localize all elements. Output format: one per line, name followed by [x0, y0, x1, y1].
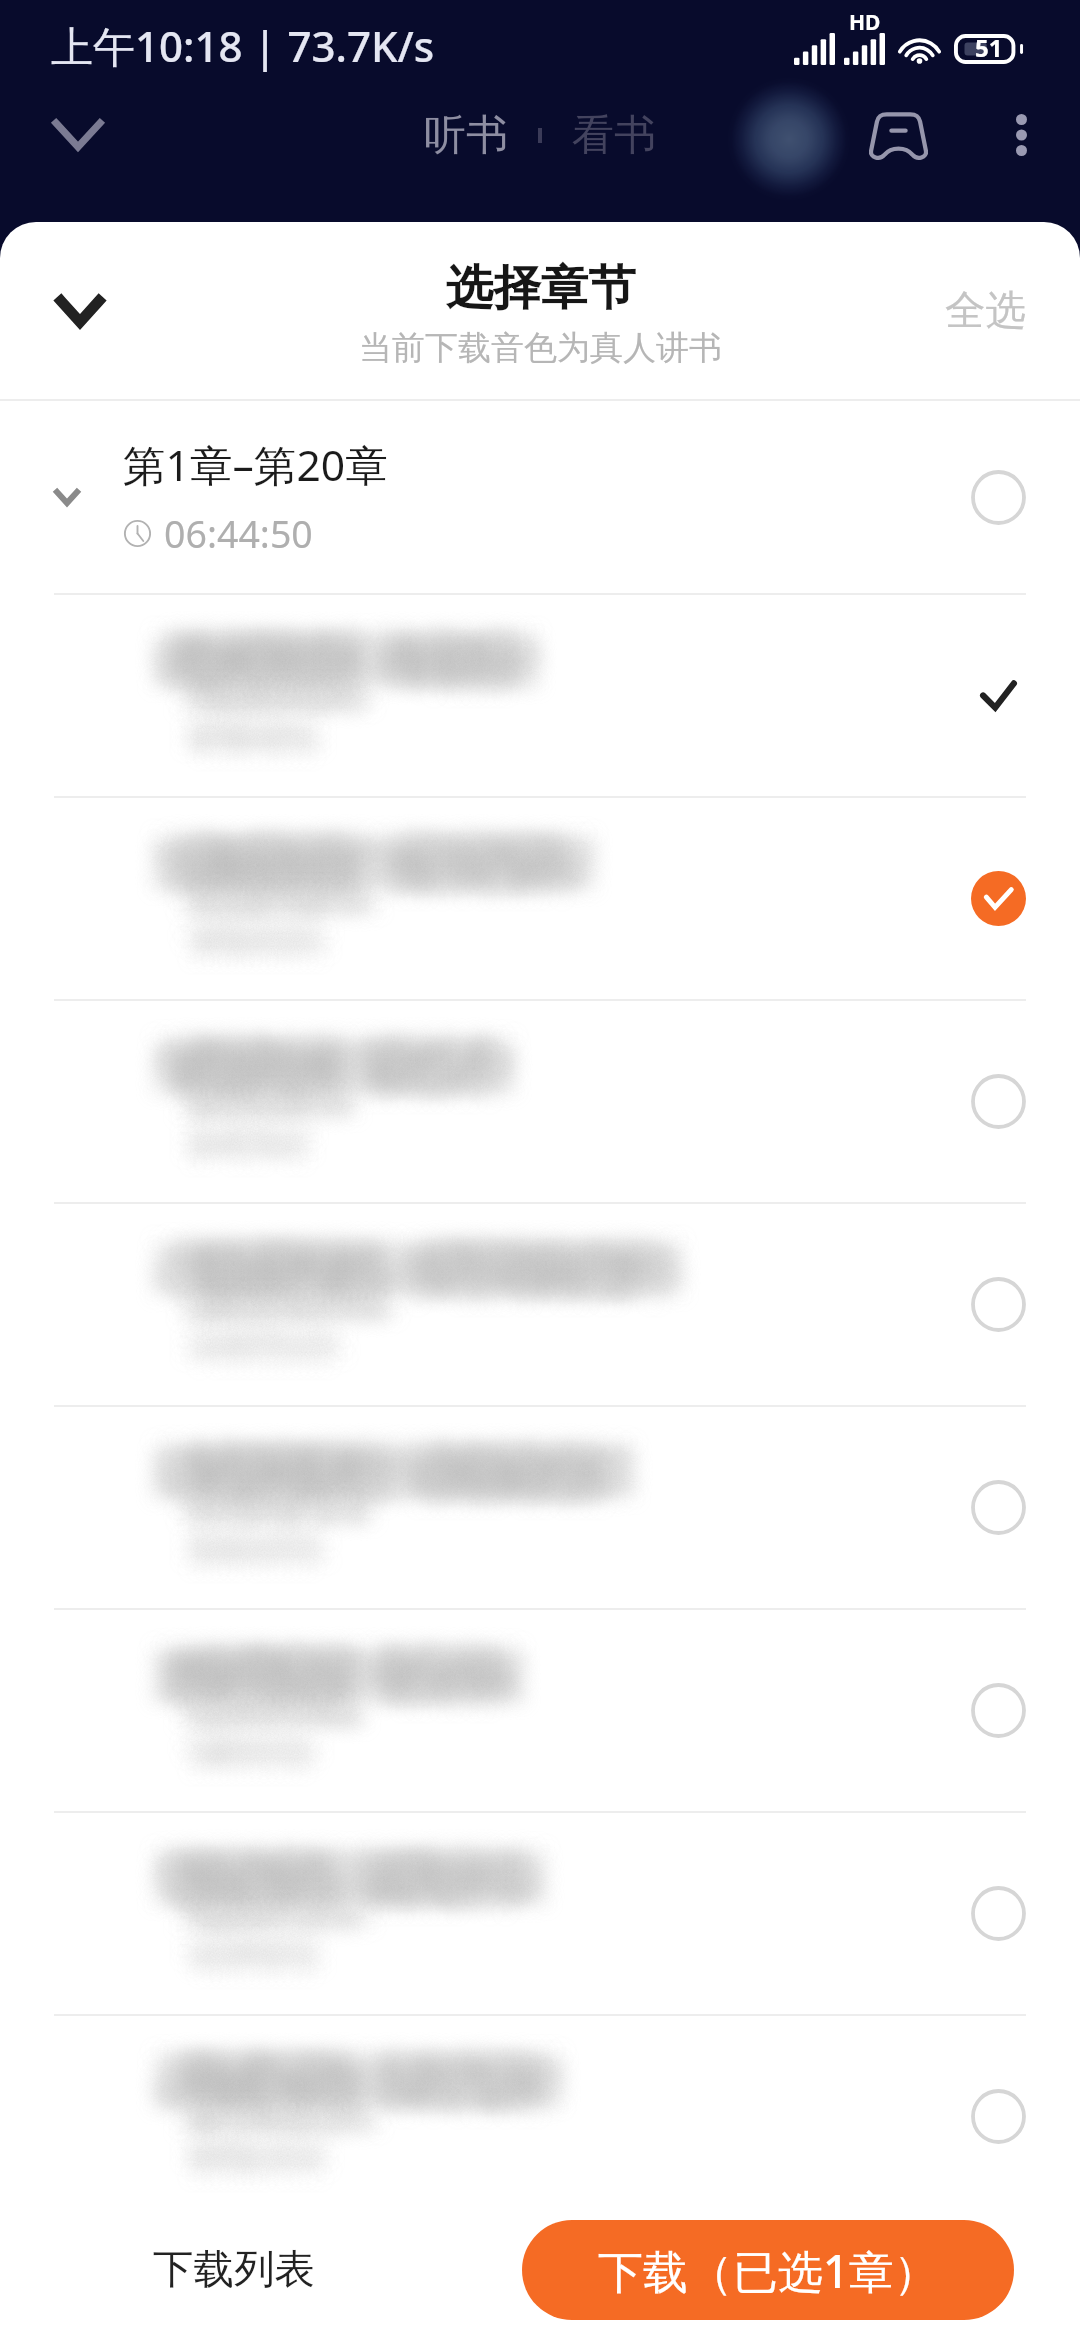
staticText: 下载列表: [153, 2244, 315, 2295]
button[interactable]: [0, 798, 1080, 999]
button[interactable]: 下载（已选1章）: [522, 2220, 1014, 2320]
button[interactable]: [0, 1407, 1080, 1608]
button[interactable]: [0, 1813, 1080, 2014]
staticText: 第1章–第20章: [123, 435, 388, 493]
staticText: 选择章节: [446, 258, 636, 318]
staticText: 上午10:18 | 73.7K/s: [51, 17, 435, 74]
staticText: 下载（已选1章）: [598, 2240, 939, 2301]
button[interactable]: 看书: [542, 91, 680, 180]
button[interactable]: 全选: [921, 261, 1050, 360]
staticText: 06:44:50: [164, 508, 313, 559]
staticText: 全选: [945, 285, 1026, 336]
staticText: HD: [849, 8, 881, 37]
button[interactable]: [0, 1204, 1080, 1405]
button[interactable]: [0, 595, 1080, 796]
button[interactable]: 下载列表: [135, 2220, 333, 2319]
button[interactable]: Close: [8, 239, 152, 383]
button[interactable]: Collapse: [12, 72, 144, 198]
button[interactable]: [0, 1610, 1080, 1811]
staticText: 看书: [572, 109, 656, 162]
button[interactable]: 听书: [400, 91, 538, 180]
button[interactable]: [0, 1001, 1080, 1202]
staticText: 听书: [424, 109, 508, 162]
staticText: 51: [975, 31, 1003, 64]
button[interactable]: More options: [964, 78, 1078, 192]
button[interactable]: 第1章–第20章: [0, 401, 1080, 593]
button[interactable]: Bookmark: [832, 72, 964, 198]
staticText: 当前下载音色为真人讲书: [359, 327, 722, 369]
button[interactable]: [0, 2016, 1080, 2217]
